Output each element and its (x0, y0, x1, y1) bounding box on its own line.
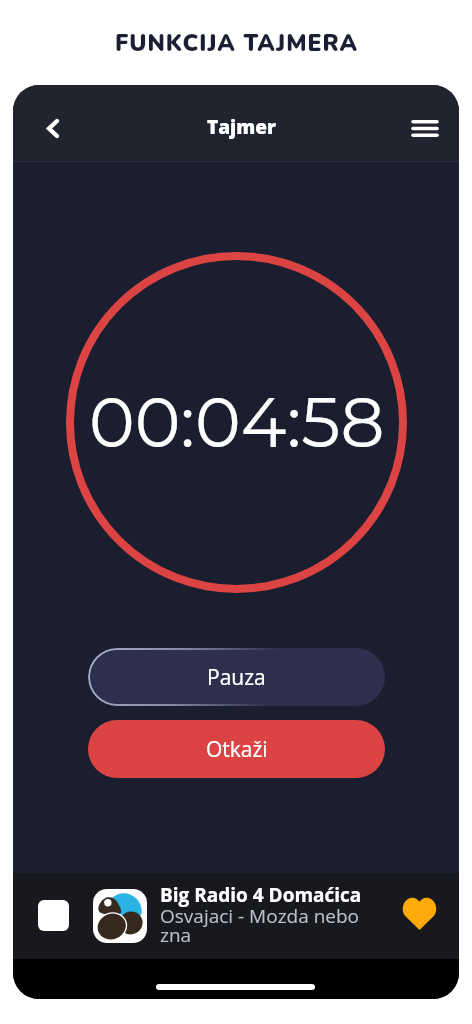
staticText: Pauza (207, 663, 266, 692)
staticText: zna (160, 922, 375, 948)
staticText: Tajmer (207, 114, 276, 140)
button[interactable]: Stop (38, 900, 69, 931)
button[interactable]: Back (31, 106, 75, 150)
staticText: Otkaži (206, 735, 268, 764)
button[interactable]: Favorite (397, 891, 441, 935)
staticText: FUNKCIJA TAJMERA (115, 28, 358, 59)
button[interactable]: Otkaži (88, 720, 385, 778)
button[interactable]: Menu (403, 106, 447, 150)
staticText: Osvajaci - Mozda nebo (160, 903, 375, 929)
button[interactable]: Pauza (88, 648, 385, 706)
staticText: Big Radio 4 Domaćica (160, 882, 370, 908)
staticText: 00:04:58 (89, 380, 385, 464)
